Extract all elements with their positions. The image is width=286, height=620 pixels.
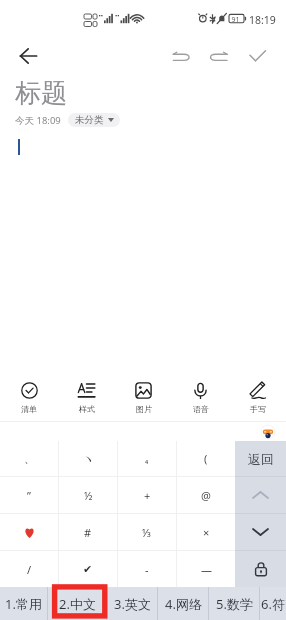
button[interactable]: 1.常用 xyxy=(0,587,47,620)
button[interactable]: - xyxy=(118,551,176,587)
staticText: ⅓ xyxy=(142,525,152,540)
staticText: / xyxy=(27,562,32,577)
button[interactable]: 样式 xyxy=(58,375,115,421)
staticText: 语音 xyxy=(193,404,209,414)
staticText: 手写 xyxy=(250,404,266,414)
button[interactable]: ✔ xyxy=(59,551,117,587)
staticText: 未分类 xyxy=(75,114,104,126)
button[interactable]: 返回 xyxy=(235,441,286,476)
staticText: × xyxy=(203,525,210,540)
button[interactable]: 3.英文 xyxy=(107,587,157,620)
button[interactable]: Page down xyxy=(235,514,286,550)
button[interactable]: 4.网络 xyxy=(158,587,208,620)
button[interactable]: 标题 xyxy=(15,77,67,110)
button[interactable]: ( xyxy=(177,441,235,476)
staticText: ヽ xyxy=(83,452,94,466)
button[interactable]: × xyxy=(177,514,235,550)
staticText: # xyxy=(84,525,92,540)
staticText: 样式 xyxy=(79,404,95,414)
button[interactable]: / xyxy=(0,551,58,587)
button[interactable]: ” xyxy=(0,477,58,513)
button[interactable]: Undo xyxy=(169,43,195,69)
button[interactable]: 图片 xyxy=(115,375,172,421)
staticText: 91 xyxy=(231,15,240,25)
button[interactable]: @ xyxy=(177,477,235,513)
staticText: ½ xyxy=(84,488,93,503)
staticText: 2.中文 xyxy=(59,595,96,613)
staticText: 4.网络 xyxy=(165,595,202,613)
staticText: @ xyxy=(201,488,211,503)
button[interactable] xyxy=(0,514,58,550)
staticText: — xyxy=(201,562,212,577)
staticText: 清单 xyxy=(21,404,37,414)
button[interactable]: # xyxy=(59,514,117,550)
button[interactable]: Page up xyxy=(235,477,286,513)
staticText: 18:19 xyxy=(249,13,276,27)
button[interactable]: 清单 xyxy=(0,375,58,421)
staticText: 、 xyxy=(24,452,35,466)
button[interactable]: Emoji xyxy=(261,425,275,439)
staticText: ( xyxy=(204,451,208,466)
staticText: 3.英文 xyxy=(114,595,151,613)
staticText: ✔ xyxy=(83,563,93,576)
button[interactable]: — xyxy=(177,551,235,587)
staticText: - xyxy=(145,562,149,577)
staticText: 返回 xyxy=(248,451,274,467)
staticText: 6.符 xyxy=(261,595,285,613)
staticText: 1.常用 xyxy=(5,595,42,613)
staticText: ₄ xyxy=(145,453,149,465)
button[interactable]: 未分类 xyxy=(68,113,120,127)
button[interactable]: ₄ xyxy=(118,441,176,476)
button[interactable]: ヽ xyxy=(59,441,117,476)
button[interactable]: 6.符 xyxy=(260,587,286,620)
button[interactable]: ⅓ xyxy=(118,514,176,550)
staticText: 图片 xyxy=(136,404,152,414)
button[interactable]: 2.中文 xyxy=(48,587,106,620)
button[interactable]: Done xyxy=(245,43,271,69)
staticText: + xyxy=(144,488,151,503)
button[interactable]: Lock xyxy=(235,551,286,587)
staticText: 今天 18:09 xyxy=(15,114,61,127)
button[interactable]: 、 xyxy=(0,441,58,476)
button[interactable]: 语音 xyxy=(172,375,229,421)
button[interactable]: ½ xyxy=(59,477,117,513)
button[interactable]: Redo xyxy=(207,43,233,69)
button[interactable]: 5.数学 xyxy=(209,587,259,620)
button[interactable]: Back xyxy=(16,44,40,68)
button[interactable]: 手写 xyxy=(229,375,286,421)
staticText: ” xyxy=(27,488,31,503)
button[interactable]: + xyxy=(118,477,176,513)
staticText: 5.数学 xyxy=(216,595,253,613)
